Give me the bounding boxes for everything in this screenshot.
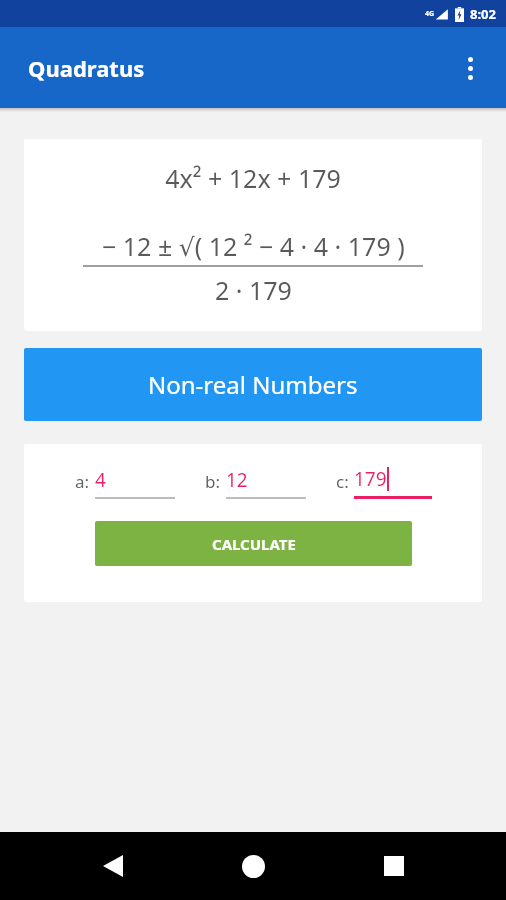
staticText: 179	[354, 466, 387, 492]
button[interactable]: b:	[205, 467, 306, 499]
staticText: Non-real Numbers	[148, 368, 358, 401]
button[interactable]: Recent apps	[366, 838, 422, 894]
staticText: b:	[205, 470, 221, 493]
staticText: − 12 ± √( 12 ² − 4 · 4 · 179 )	[102, 229, 405, 263]
button[interactable]: Non-real Numbers	[24, 348, 482, 421]
staticText: 4	[95, 467, 106, 493]
staticText: c:	[336, 470, 349, 493]
staticText: 12	[226, 467, 248, 493]
staticText: CALCULATE	[212, 534, 296, 554]
staticText: 4x² + 12x + 179	[165, 161, 341, 195]
staticText: 2 · 179	[215, 273, 292, 307]
button[interactable]: c:	[336, 466, 432, 499]
staticText: 4G	[425, 9, 435, 19]
staticText: a:	[75, 470, 90, 493]
staticText: Quadratus	[28, 53, 145, 83]
button[interactable]: Back	[85, 838, 141, 894]
button[interactable]: More options	[446, 44, 494, 92]
staticText: 8:02	[470, 5, 496, 23]
button[interactable]: CALCULATE	[95, 521, 412, 566]
button[interactable]: a:	[75, 467, 175, 499]
button[interactable]: Home	[225, 838, 281, 894]
